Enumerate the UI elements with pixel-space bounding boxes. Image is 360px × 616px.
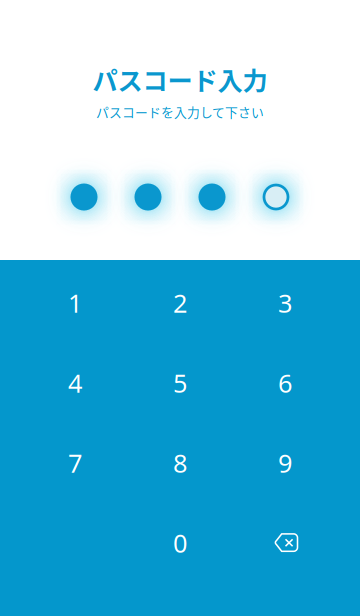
staticText: 5	[173, 366, 187, 400]
staticText: 6	[278, 366, 292, 400]
button[interactable]: 8	[127, 423, 232, 503]
button[interactable]: 1	[22, 263, 127, 343]
staticText: パスコードを入力して下さい	[96, 102, 264, 121]
button[interactable]: 7	[22, 423, 127, 503]
staticText: パスコード入力	[92, 61, 267, 97]
staticText: 3	[278, 286, 292, 320]
button[interactable]: Delete	[232, 503, 337, 583]
staticText: 4	[68, 366, 82, 400]
button[interactable]: 2	[127, 263, 232, 343]
button[interactable]: 9	[232, 423, 337, 503]
staticText: 8	[173, 446, 187, 480]
button[interactable]: 5	[127, 343, 232, 423]
button[interactable]: 6	[232, 343, 337, 423]
button[interactable]: 3	[232, 263, 337, 343]
button[interactable]: 4	[22, 343, 127, 423]
staticText: 7	[68, 446, 82, 480]
staticText: 2	[173, 286, 187, 320]
staticText: 1	[68, 286, 82, 320]
staticText: 0	[173, 526, 187, 560]
button[interactable]: 0	[127, 503, 232, 583]
staticText: 9	[278, 446, 292, 480]
